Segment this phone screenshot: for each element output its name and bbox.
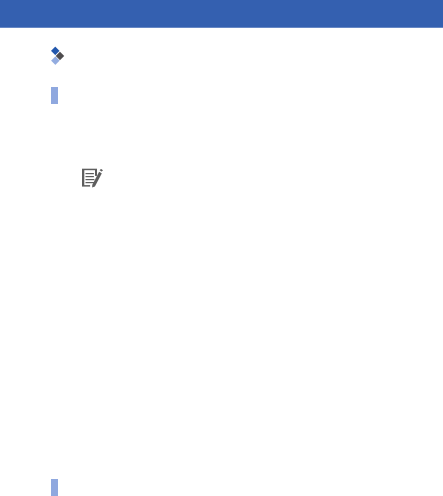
button[interactable]: Home bbox=[51, 47, 64, 65]
button[interactable]: Compose bbox=[82, 169, 103, 189]
